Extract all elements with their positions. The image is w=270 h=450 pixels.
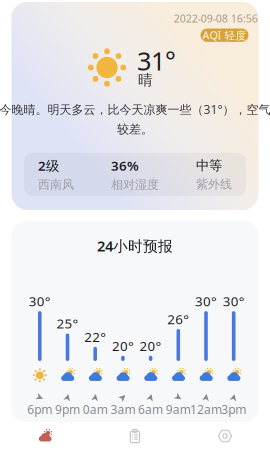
button[interactable]: 设置 (180, 422, 270, 450)
staticText: 30° (195, 292, 217, 310)
staticText: 9am (166, 401, 191, 417)
staticText: 6am (138, 401, 163, 417)
staticText: 20° (140, 337, 162, 355)
staticText: AQI 轻度 (202, 28, 246, 42)
staticText: 30° (223, 292, 245, 310)
staticText: 31° (137, 44, 176, 77)
staticText: 今晚晴。明天多云，比今天凉爽一些（31°），空气 (0, 101, 270, 117)
staticText: 12am (190, 401, 222, 417)
staticText: 较差。 (117, 122, 153, 137)
staticText: 9pm (55, 401, 80, 417)
staticText: 36% (111, 157, 139, 174)
button[interactable]: 天气 (0, 422, 90, 450)
staticText: 6pm (27, 401, 52, 417)
staticText: 25° (56, 315, 78, 332)
staticText: 相对湿度 (111, 177, 159, 192)
staticText: 晴 (138, 71, 153, 89)
staticText: 3pm (221, 401, 246, 417)
staticText: 26° (167, 310, 189, 328)
staticText: 2022-09-08 16:56 (174, 11, 258, 25)
button[interactable]: 城市列表 (90, 422, 180, 450)
staticText: 24小时预报 (97, 236, 173, 255)
staticText: 30° (29, 292, 51, 310)
staticText: 0am (83, 401, 108, 417)
staticText: 西南风 (38, 177, 74, 192)
staticText: 20° (112, 337, 134, 355)
staticText: 22° (84, 328, 106, 346)
button[interactable]: AQI 轻度 (200, 28, 248, 42)
staticText: 紫外线 (196, 177, 232, 191)
staticText: 2级 (38, 157, 59, 174)
staticText: 3am (110, 401, 135, 417)
staticText: 中等 (196, 157, 222, 174)
